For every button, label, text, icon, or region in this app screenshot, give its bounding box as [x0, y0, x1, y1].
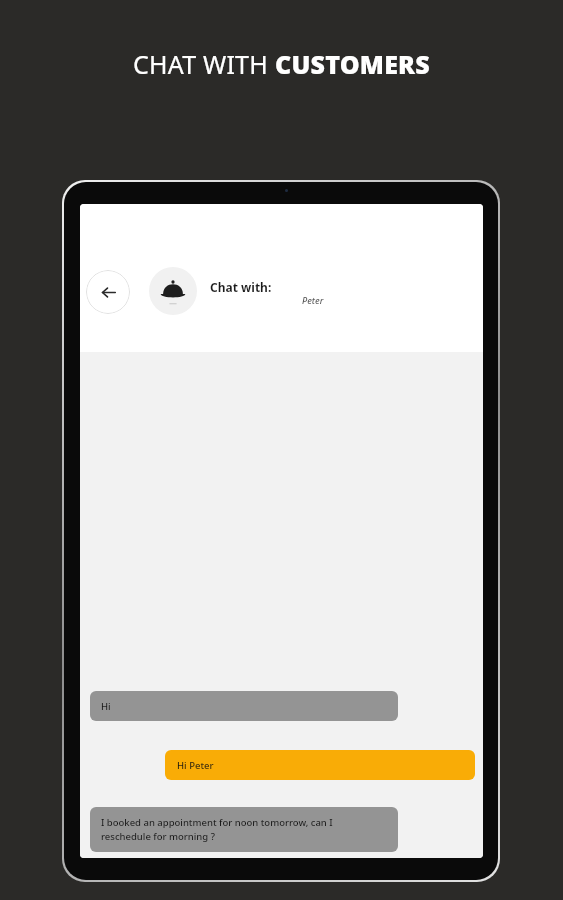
button[interactable]: Hi: [90, 691, 398, 721]
button[interactable]: Peter profile photo: [149, 267, 197, 315]
button[interactable]: I booked an appointment for noon tomorro…: [90, 807, 398, 852]
button[interactable]: Hi Peter: [165, 750, 475, 780]
staticText: CUSTOMERS: [275, 47, 430, 81]
staticText: CHAT WITH: [133, 47, 275, 81]
staticText: Peter: [302, 294, 324, 306]
staticText: Hi Peter: [177, 759, 214, 772]
staticText: Hi: [101, 700, 111, 713]
staticText: Chat with:: [210, 279, 272, 295]
button[interactable]: Back: [86, 270, 130, 314]
staticText: I booked an appointment for noon tomorro…: [101, 816, 333, 843]
